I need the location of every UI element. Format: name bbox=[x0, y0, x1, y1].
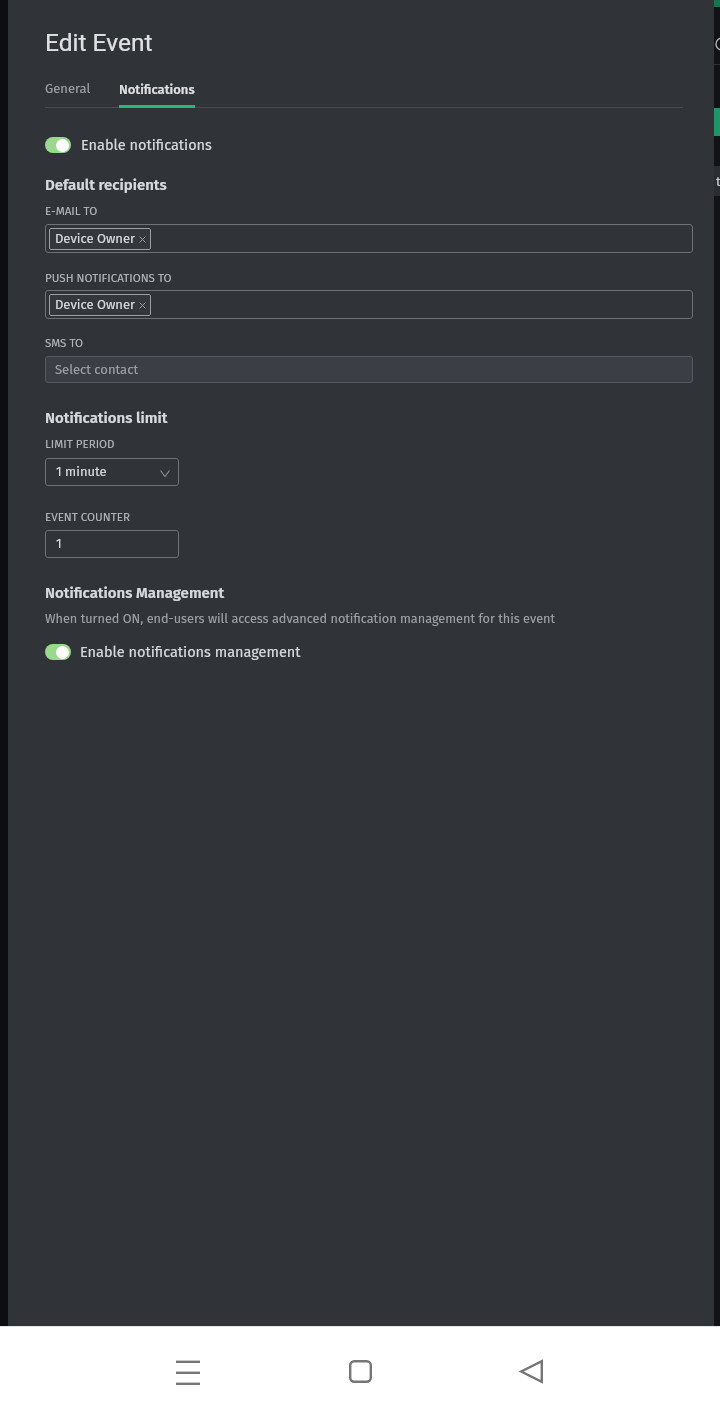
staticText: PUSH NOTIFICATIONS TO bbox=[45, 271, 172, 285]
staticText: Device Owner bbox=[55, 297, 135, 313]
staticText: Enable notifications bbox=[81, 136, 212, 153]
staticText: LIMIT PERIOD bbox=[45, 437, 115, 451]
staticText: E-MAIL TO bbox=[45, 204, 98, 218]
staticText: 1 minute bbox=[56, 464, 107, 480]
staticText: 1 bbox=[56, 536, 62, 552]
other: Remove bbox=[139, 236, 146, 243]
staticText: When turned ON, end-users will access ad… bbox=[45, 611, 556, 626]
other: Remove bbox=[139, 302, 146, 309]
button[interactable]: Enable notifications management bbox=[45, 642, 301, 661]
staticText: Default recipients bbox=[45, 176, 167, 194]
staticText: Notifications Management bbox=[45, 584, 225, 602]
button[interactable]: Select contact bbox=[45, 356, 693, 383]
staticText: Select contact bbox=[55, 362, 139, 378]
staticText: EVENT COUNTER bbox=[45, 510, 130, 524]
staticText: Device Owner bbox=[55, 231, 135, 247]
button[interactable]: Back bbox=[503, 1343, 559, 1399]
staticText: t bbox=[716, 174, 720, 190]
button[interactable]: Home bbox=[332, 1343, 388, 1399]
button[interactable]: 1 bbox=[45, 530, 179, 558]
button[interactable]: Recent apps bbox=[160, 1343, 216, 1399]
button[interactable]: Enable notifications bbox=[45, 135, 212, 154]
staticText: Enable notifications management bbox=[80, 643, 301, 660]
staticText: Notifications bbox=[119, 82, 195, 98]
staticText: SMS TO bbox=[45, 336, 84, 350]
button[interactable]: Notifications bbox=[119, 80, 195, 100]
button[interactable]: Device Owner bbox=[45, 224, 693, 253]
staticText: Notifications limit bbox=[45, 409, 168, 427]
staticText: Edit Event bbox=[45, 28, 153, 57]
button[interactable]: General bbox=[45, 79, 91, 99]
staticText: General bbox=[45, 81, 91, 97]
button[interactable]: Device Owner bbox=[45, 290, 693, 319]
button[interactable]: 1 minute bbox=[45, 458, 179, 486]
